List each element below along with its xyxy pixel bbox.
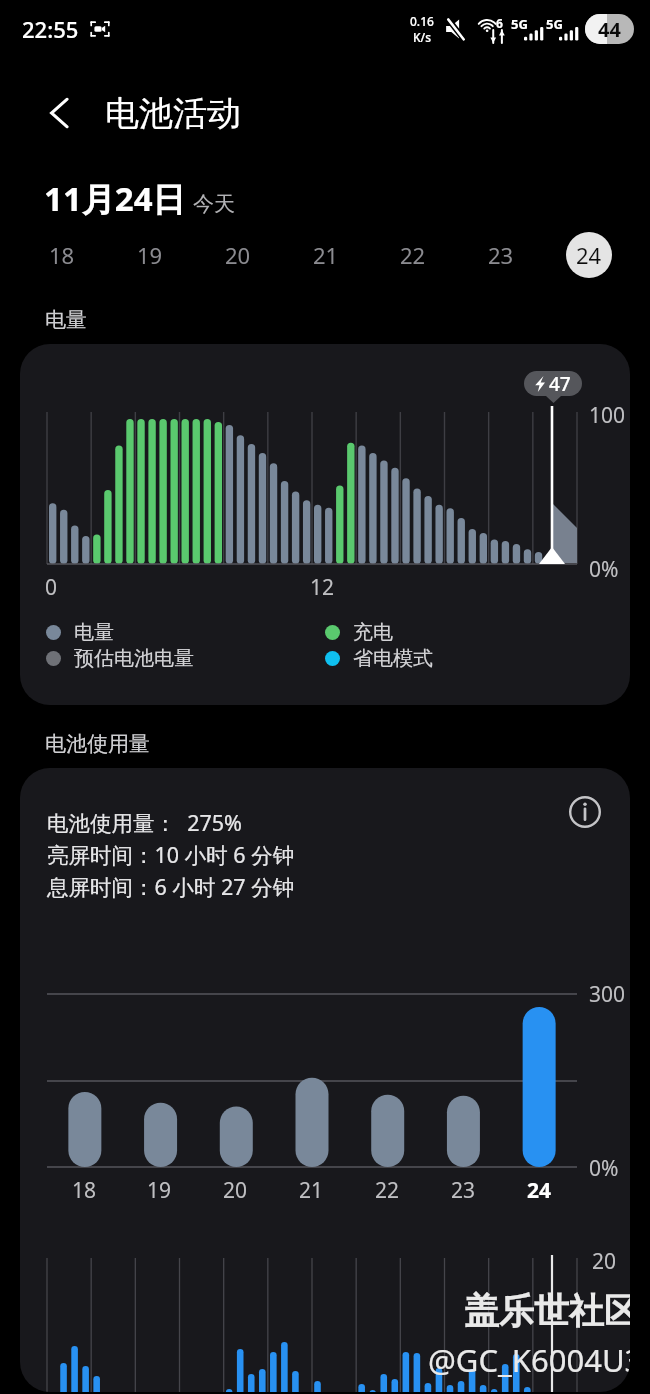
staticText: 电量 [74, 620, 114, 645]
staticText: 电池活动 [105, 92, 241, 135]
staticText: 5G [511, 15, 528, 33]
staticText: 47 [549, 371, 571, 396]
staticText: 100 [589, 401, 626, 430]
staticText: 22 [375, 1176, 400, 1205]
button[interactable]: 18 [39, 232, 85, 278]
staticText: 0 [45, 573, 58, 602]
staticText: 亮屏时间：10 小时 6 分钟 [47, 840, 295, 869]
staticText: 22 [400, 240, 426, 270]
staticText: 盖乐世社区 [464, 1289, 630, 1333]
staticText: 5G [546, 15, 563, 33]
staticText: 预估电池电量 [74, 646, 194, 671]
button[interactable]: Back [31, 85, 87, 141]
staticText: 0% [589, 1154, 619, 1183]
button[interactable]: 20 [215, 232, 261, 278]
staticText: 20 [592, 1247, 617, 1276]
staticText: 今天 [193, 191, 235, 217]
button[interactable]: 22 [390, 232, 436, 278]
staticText: K/s [413, 29, 432, 45]
staticText: 11月24日 [44, 176, 186, 221]
staticText: 23 [488, 240, 514, 270]
staticText: 0% [589, 555, 619, 584]
staticText: 18 [49, 240, 75, 270]
staticText: 息屏时间：6 小时 27 分钟 [47, 872, 295, 901]
staticText: 充电 [353, 620, 393, 645]
button[interactable]: 21 [303, 232, 349, 278]
staticText: 20 [223, 1176, 248, 1205]
button[interactable]: 24 [566, 232, 612, 278]
staticText: 300 [589, 980, 626, 1009]
staticText: 24 [527, 1176, 552, 1205]
staticText: 44 [598, 16, 621, 43]
button[interactable]: 电池使用量： 275% [20, 768, 630, 1392]
staticText: 6 [496, 15, 503, 31]
staticText: 22:55 [22, 14, 79, 44]
staticText: 19 [137, 240, 163, 270]
staticText: 20 [225, 240, 251, 270]
staticText: 18 [72, 1176, 97, 1205]
staticText: 21 [313, 240, 339, 270]
button[interactable]: 19 [127, 232, 173, 278]
button[interactable]: 100 [20, 344, 630, 705]
staticText: 0.16 [410, 13, 434, 29]
staticText: 电池使用量： 275% [47, 808, 242, 837]
staticText: 24 [576, 240, 602, 270]
staticText: 电量 [45, 307, 87, 333]
staticText: 21 [299, 1176, 324, 1205]
staticText: @GC_K6004U3 [428, 1339, 630, 1381]
button[interactable]: Info [563, 790, 607, 834]
staticText: 省电模式 [353, 646, 433, 671]
staticText: 电池使用量 [45, 731, 150, 757]
staticText: 12 [310, 573, 335, 602]
staticText: 23 [451, 1176, 476, 1205]
staticText: 19 [147, 1176, 172, 1205]
button[interactable]: 23 [478, 232, 524, 278]
